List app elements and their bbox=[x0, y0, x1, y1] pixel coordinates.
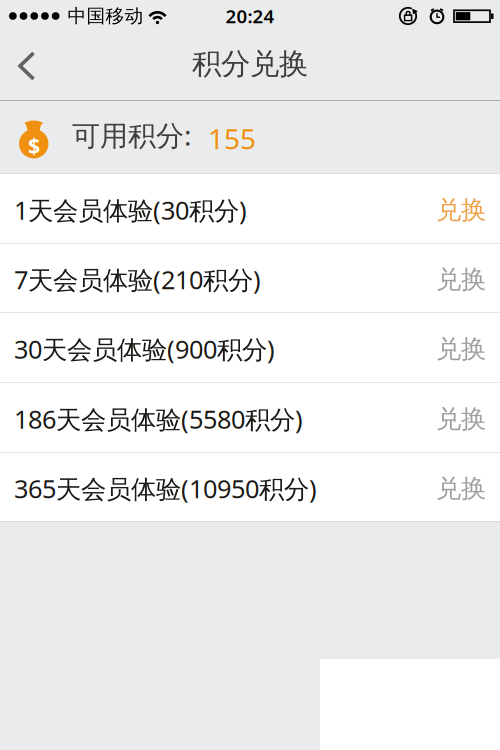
staticText: 中国移动 bbox=[67, 4, 143, 27]
staticText: 1天会员体验(30积分) bbox=[14, 193, 247, 227]
staticText: 可用积分: bbox=[72, 116, 192, 154]
staticText: 186天会员体验(5580积分) bbox=[14, 402, 303, 436]
button[interactable]: 兑换 bbox=[430, 461, 492, 516]
staticText: 积分兑换 bbox=[192, 46, 308, 82]
staticText: 30天会员体验(900积分) bbox=[14, 332, 275, 366]
staticText: 365天会员体验(10950积分) bbox=[14, 472, 317, 505]
button[interactable]: 兑换 bbox=[430, 321, 492, 376]
staticText: 兑换 bbox=[436, 333, 486, 364]
button[interactable]: 兑换 bbox=[430, 391, 492, 446]
staticText: 兑换 bbox=[436, 403, 486, 434]
staticText: $ bbox=[28, 131, 40, 160]
staticText: 7天会员体验(210积分) bbox=[14, 263, 261, 296]
staticText: 兑换 bbox=[436, 194, 486, 225]
staticText: 20:24 bbox=[225, 4, 274, 28]
staticText: 155 bbox=[208, 120, 256, 157]
button[interactable]: 兑换 bbox=[430, 252, 492, 307]
button[interactable]: Back bbox=[0, 33, 37, 99]
staticText: 兑换 bbox=[436, 473, 486, 504]
button[interactable]: 兑换 bbox=[430, 182, 492, 237]
staticText: 兑换 bbox=[436, 264, 486, 295]
